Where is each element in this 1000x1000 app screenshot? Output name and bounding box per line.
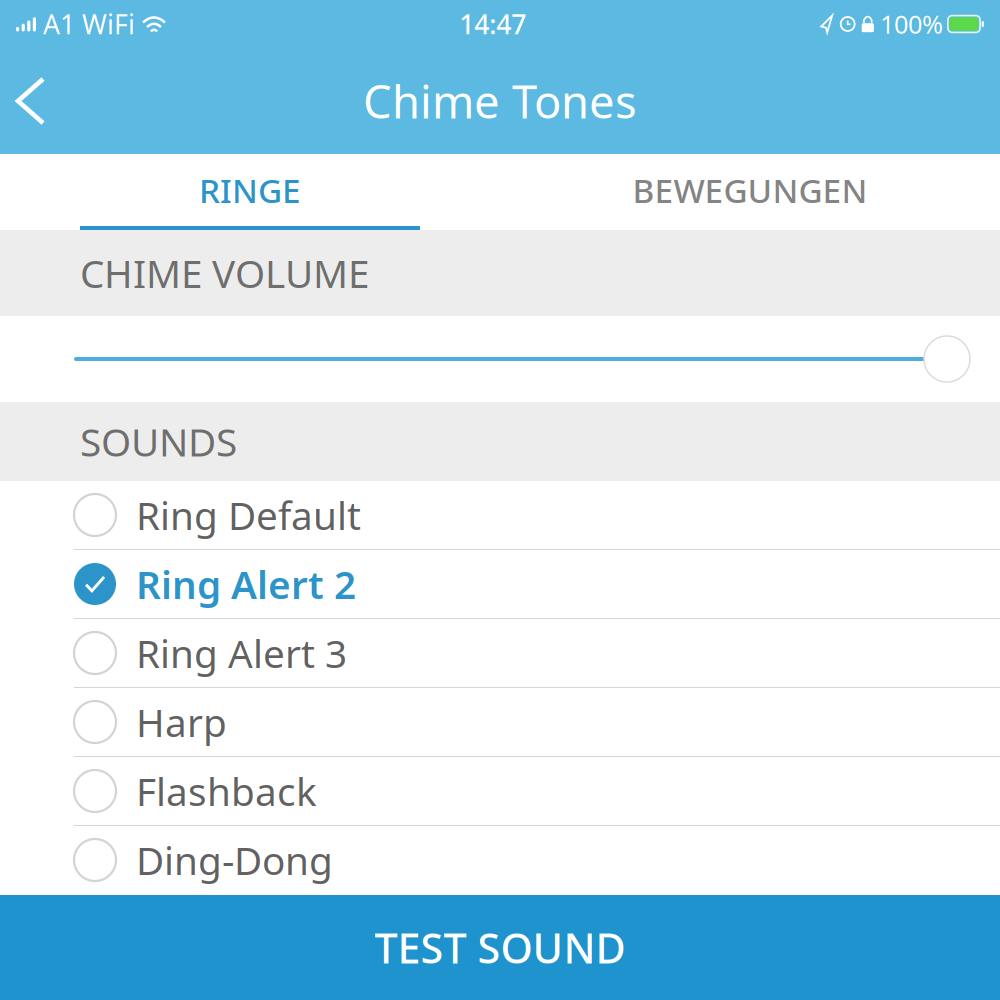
staticText: CHIME VOLUME (80, 247, 369, 299)
staticText: TEST SOUND (374, 920, 625, 975)
staticText: BEWEGUNGEN (632, 168, 867, 212)
button[interactable]: Back (0, 56, 71, 146)
staticText: Ring Default (136, 489, 361, 541)
button[interactable]: Ding-Dong (0, 826, 1000, 895)
staticText: Harp (136, 696, 227, 748)
staticText: Flashback (136, 765, 317, 817)
staticText: Ring Alert 2 (136, 558, 356, 610)
staticText: SOUNDS (80, 416, 237, 467)
button[interactable]: RINGE (0, 154, 500, 230)
staticText: 14:47 (459, 6, 526, 42)
button[interactable]: Flashback (0, 757, 1000, 826)
staticText: 100% (880, 7, 943, 41)
button[interactable]: Ring Alert 2 (0, 550, 1000, 619)
staticText: RINGE (199, 168, 301, 212)
staticText: A1 WiFi (43, 6, 135, 42)
button[interactable]: Harp (0, 688, 1000, 757)
staticText: Chime Tones (363, 71, 637, 131)
button[interactable]: Ring Alert 3 (0, 619, 1000, 688)
button[interactable]: TEST SOUND (0, 895, 1000, 1000)
staticText: Ring Alert 3 (136, 627, 347, 679)
button[interactable]: BEWEGUNGEN (500, 154, 1000, 230)
button[interactable]: Ring Default (0, 481, 1000, 550)
staticText: Ding-Dong (136, 834, 333, 886)
